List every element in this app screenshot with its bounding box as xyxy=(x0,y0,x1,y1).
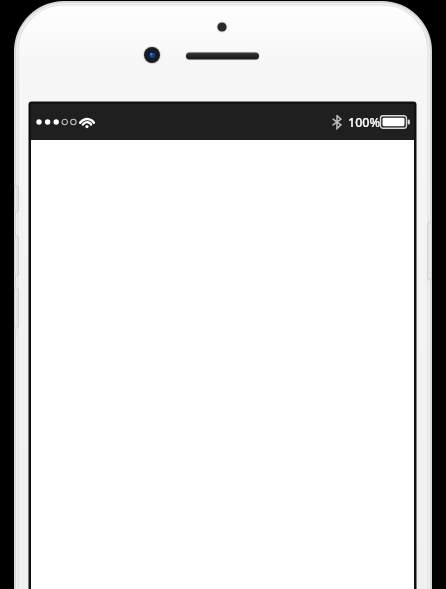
other: iPhone device screen xyxy=(0,0,446,589)
button[interactable]: iPhone device screen xyxy=(0,0,446,589)
